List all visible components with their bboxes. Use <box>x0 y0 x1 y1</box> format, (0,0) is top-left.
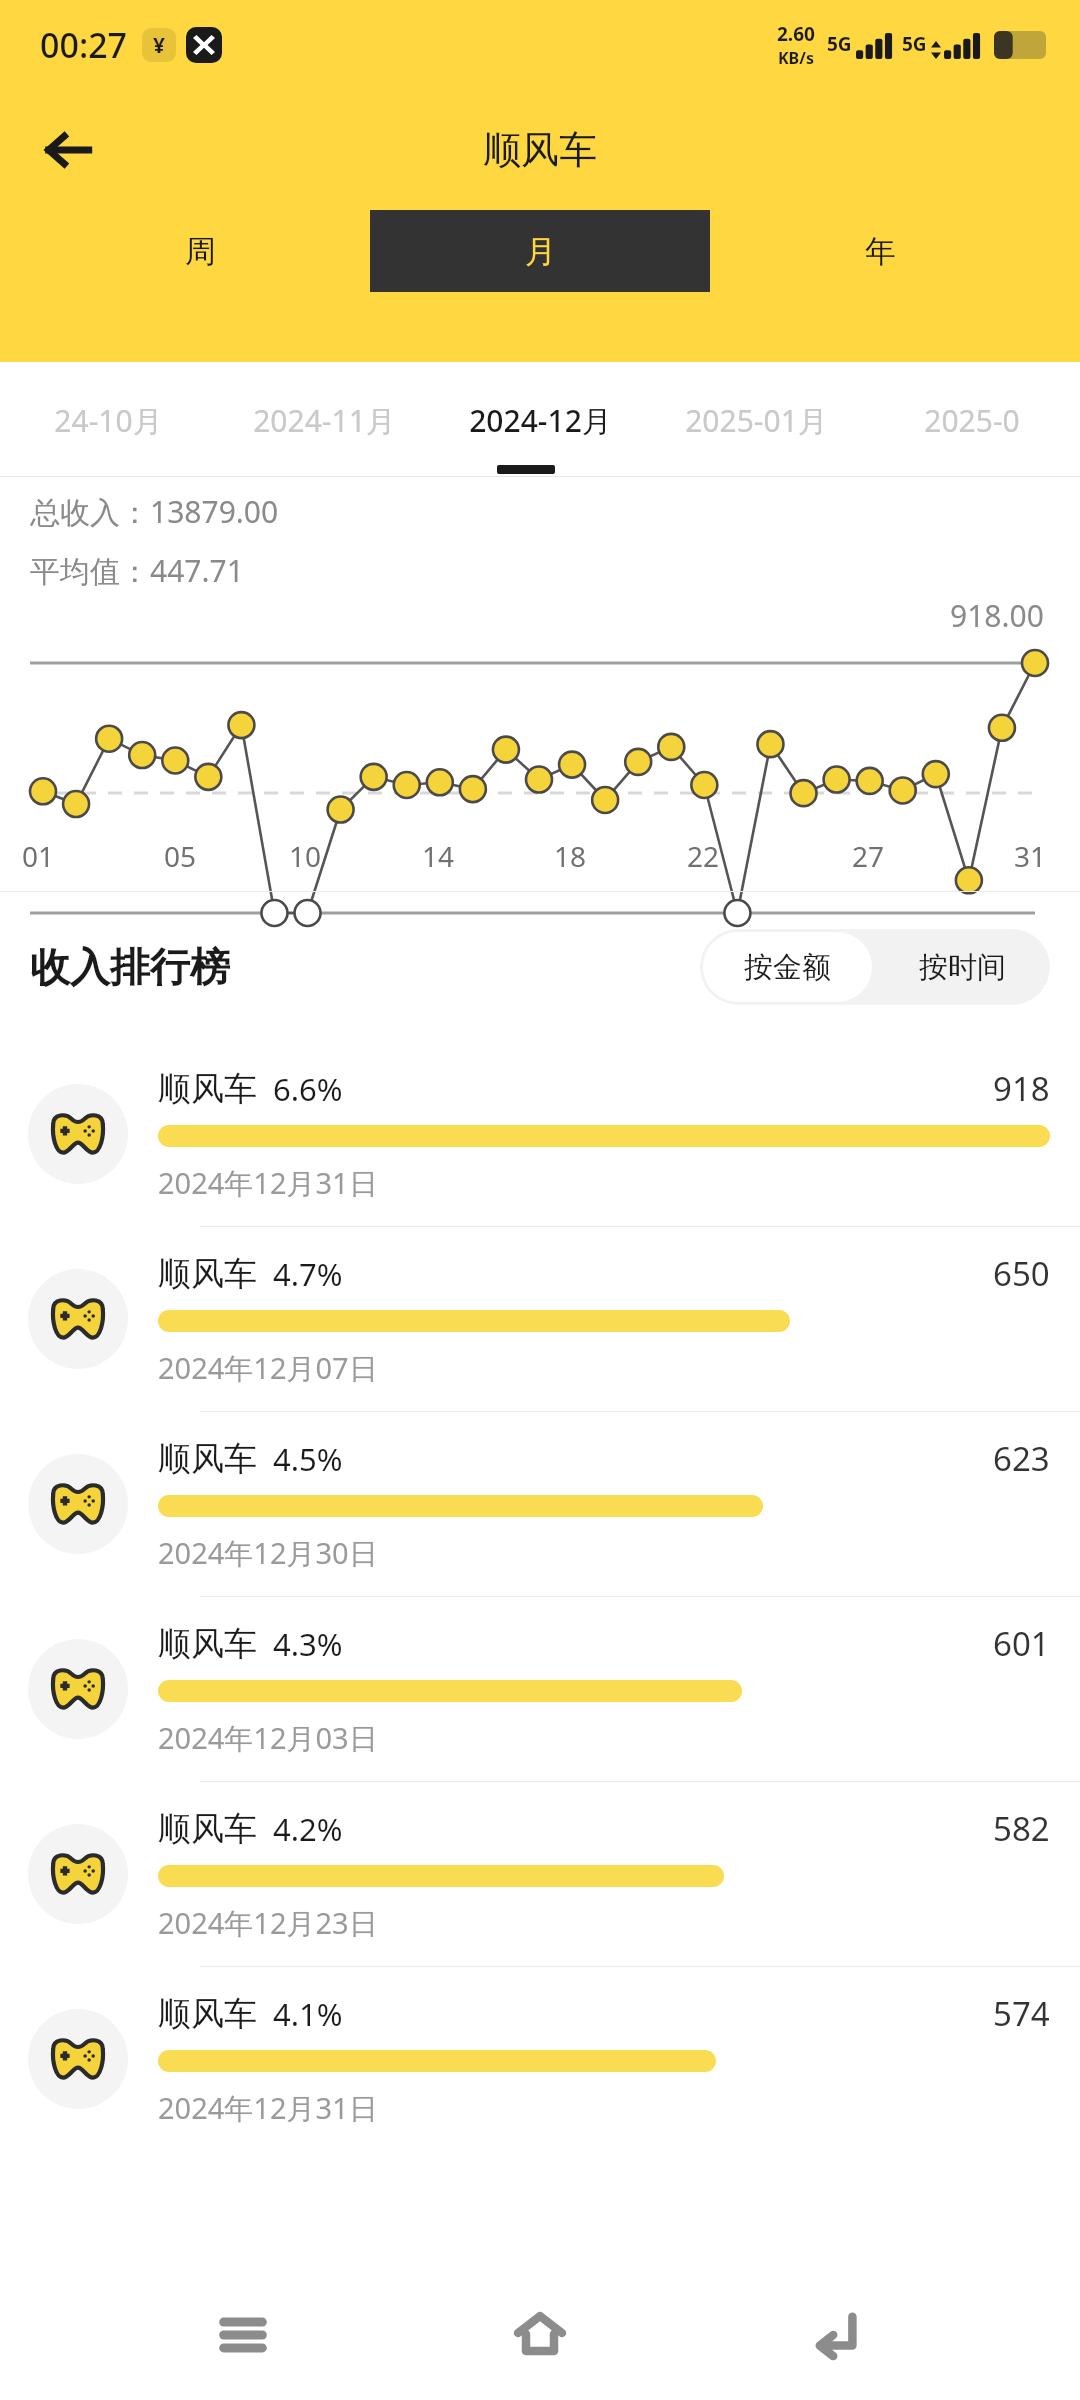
staticText: 2.60 <box>777 21 815 47</box>
staticText: 顺风车 <box>158 1068 257 1110</box>
button[interactable]: 2025-0 <box>864 400 1080 477</box>
staticText: 2024-12月 <box>469 400 612 441</box>
staticText: 2024年12月31日 <box>158 1163 378 1203</box>
staticText: 2024年12月07日 <box>158 1348 378 1388</box>
button[interactable]: 按金额 <box>703 932 872 1002</box>
button[interactable]: 顺风车 <box>0 1967 1080 2151</box>
staticText: 650 <box>993 1251 1050 1296</box>
staticText: 18 <box>554 837 587 875</box>
staticText: 623 <box>993 1436 1050 1481</box>
staticText: 24-10月 <box>54 400 163 441</box>
staticText: 总收入：13879.00 <box>30 491 279 532</box>
staticText: 05 <box>164 837 197 875</box>
button[interactable]: Home <box>485 2280 595 2390</box>
button[interactable]: 24-10月 <box>0 400 216 477</box>
button[interactable]: 按时间 <box>875 929 1050 1005</box>
staticText: 按时间 <box>919 949 1006 986</box>
staticText: 22 <box>687 837 720 875</box>
staticText: 按金额 <box>744 949 831 986</box>
staticText: 10 <box>289 837 322 875</box>
button[interactable]: 2025-01月 <box>648 400 864 477</box>
button[interactable]: 年 <box>710 210 1050 292</box>
staticText: 2024-11月 <box>253 400 396 441</box>
staticText: 4.3% <box>273 1623 343 1665</box>
staticText: 2024年12月31日 <box>158 2088 378 2128</box>
staticText: 4.2% <box>273 1808 343 1850</box>
staticText: 顺风车 <box>158 1623 257 1665</box>
button[interactable]: 顺风车 <box>0 1782 1080 1966</box>
staticText: 收入排行榜 <box>30 942 230 992</box>
staticText: ¥ <box>153 31 166 60</box>
button[interactable]: Recent apps <box>188 2280 298 2390</box>
staticText: 2024年12月03日 <box>158 1718 378 1758</box>
staticText: 2025-01月 <box>685 400 828 441</box>
button[interactable]: 2024-11月 <box>216 400 432 477</box>
button[interactable]: 2024-12月 <box>432 400 648 477</box>
staticText: 2024年12月30日 <box>158 1533 378 1573</box>
staticText: 顺风车 <box>483 126 597 174</box>
staticText: 5G <box>902 31 927 57</box>
staticText: 月 <box>525 232 556 271</box>
staticText: 年 <box>865 232 896 271</box>
staticText: 2025-0 <box>924 400 1020 441</box>
staticText: 574 <box>993 1991 1050 2036</box>
staticText: 6.6% <box>273 1068 343 1110</box>
staticText: 5G <box>827 31 852 57</box>
staticText: 14 <box>422 837 455 875</box>
staticText: 918.00 <box>950 595 1044 636</box>
staticText: 顺风车 <box>158 1808 257 1850</box>
staticText: 582 <box>993 1806 1050 1851</box>
staticText: 顺风车 <box>158 1993 257 2035</box>
button[interactable]: Back <box>783 2280 893 2390</box>
staticText: 27 <box>852 837 885 875</box>
staticText: 4.7% <box>273 1253 343 1295</box>
staticText: 4.1% <box>273 1993 343 2035</box>
staticText: 31 <box>1014 837 1047 875</box>
button[interactable]: 顺风车 <box>0 1227 1080 1411</box>
button[interactable]: 顺风车 <box>0 1412 1080 1596</box>
staticText: KB/s <box>778 47 814 69</box>
staticText: 顺风车 <box>158 1438 257 1480</box>
staticText: 00:27 <box>40 22 128 68</box>
staticText: 2024年12月23日 <box>158 1903 378 1943</box>
staticText: 918 <box>993 1066 1050 1111</box>
button[interactable]: 顺风车 <box>0 1042 1080 1226</box>
button[interactable]: 周 <box>30 210 370 292</box>
staticText: 周 <box>185 232 216 271</box>
staticText: 平均值：447.71 <box>30 550 244 591</box>
staticText: 4.5% <box>273 1438 343 1480</box>
button[interactable]: 顺风车 <box>0 1597 1080 1781</box>
staticText: 01 <box>22 837 55 875</box>
button[interactable]: 月 <box>370 210 710 292</box>
button[interactable]: Back <box>30 112 106 188</box>
staticText: 601 <box>993 1621 1050 1666</box>
staticText: 顺风车 <box>158 1253 257 1295</box>
